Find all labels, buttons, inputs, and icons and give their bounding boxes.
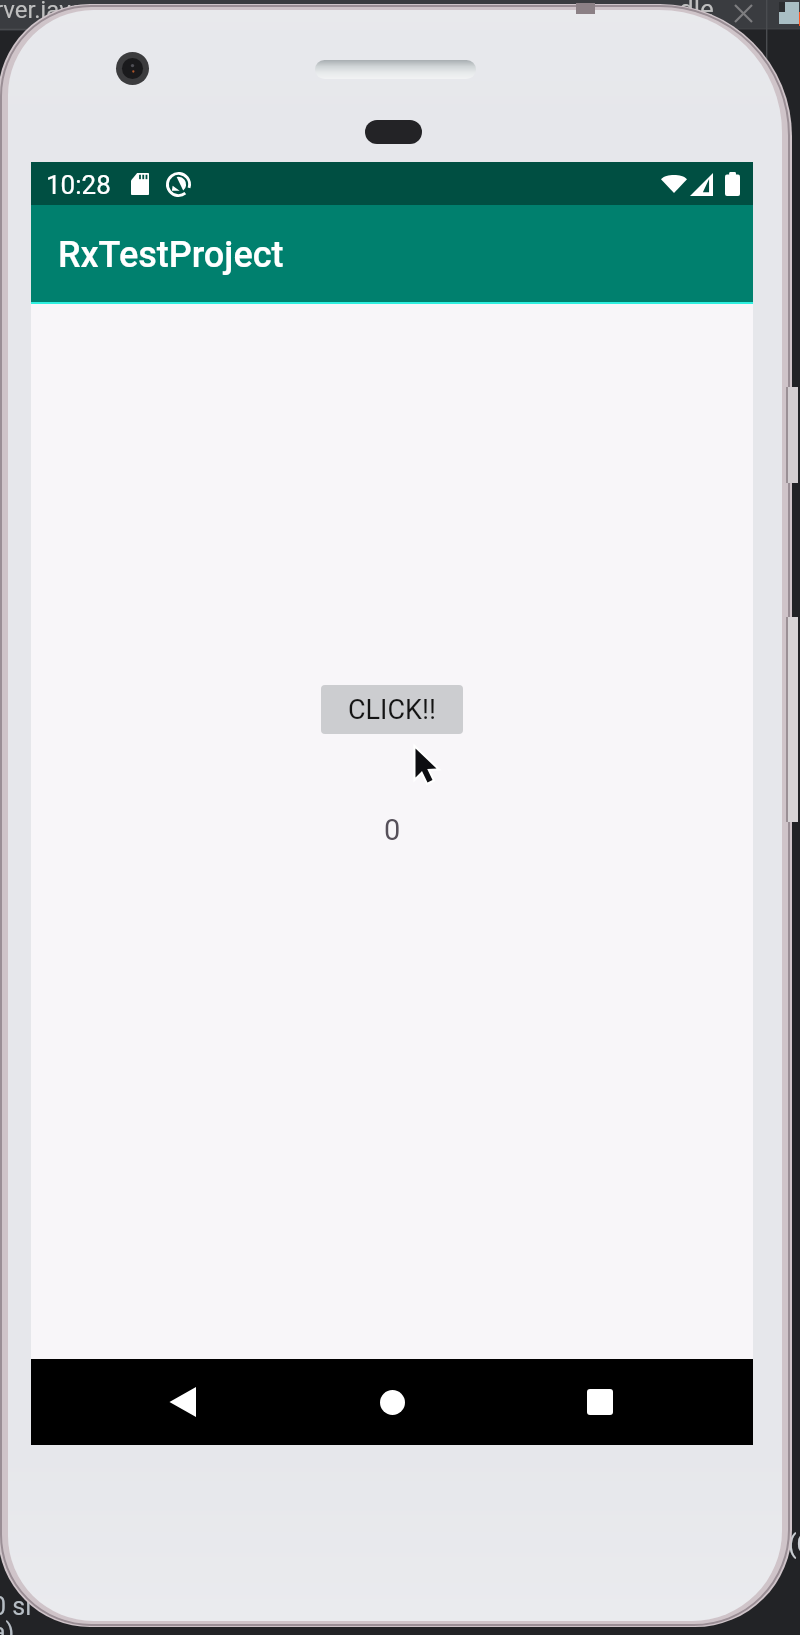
staticText: RxTestProject — [58, 234, 284, 276]
staticText: (C — [788, 1530, 800, 1559]
button[interactable]: Home — [349, 1359, 435, 1445]
button[interactable]: Recent apps — [557, 1359, 643, 1445]
staticText: 0 si — [0, 1592, 32, 1621]
button[interactable]: CLICK!! — [321, 685, 463, 734]
button[interactable]: Back — [140, 1359, 226, 1445]
staticText: 0 — [384, 813, 401, 847]
staticText: a) — [0, 1618, 15, 1635]
staticText: rver.java — [0, 0, 84, 24]
staticText: 10:28 — [46, 170, 111, 200]
staticText: CLICK!! — [348, 694, 436, 726]
staticText: dle — [679, 0, 714, 24]
